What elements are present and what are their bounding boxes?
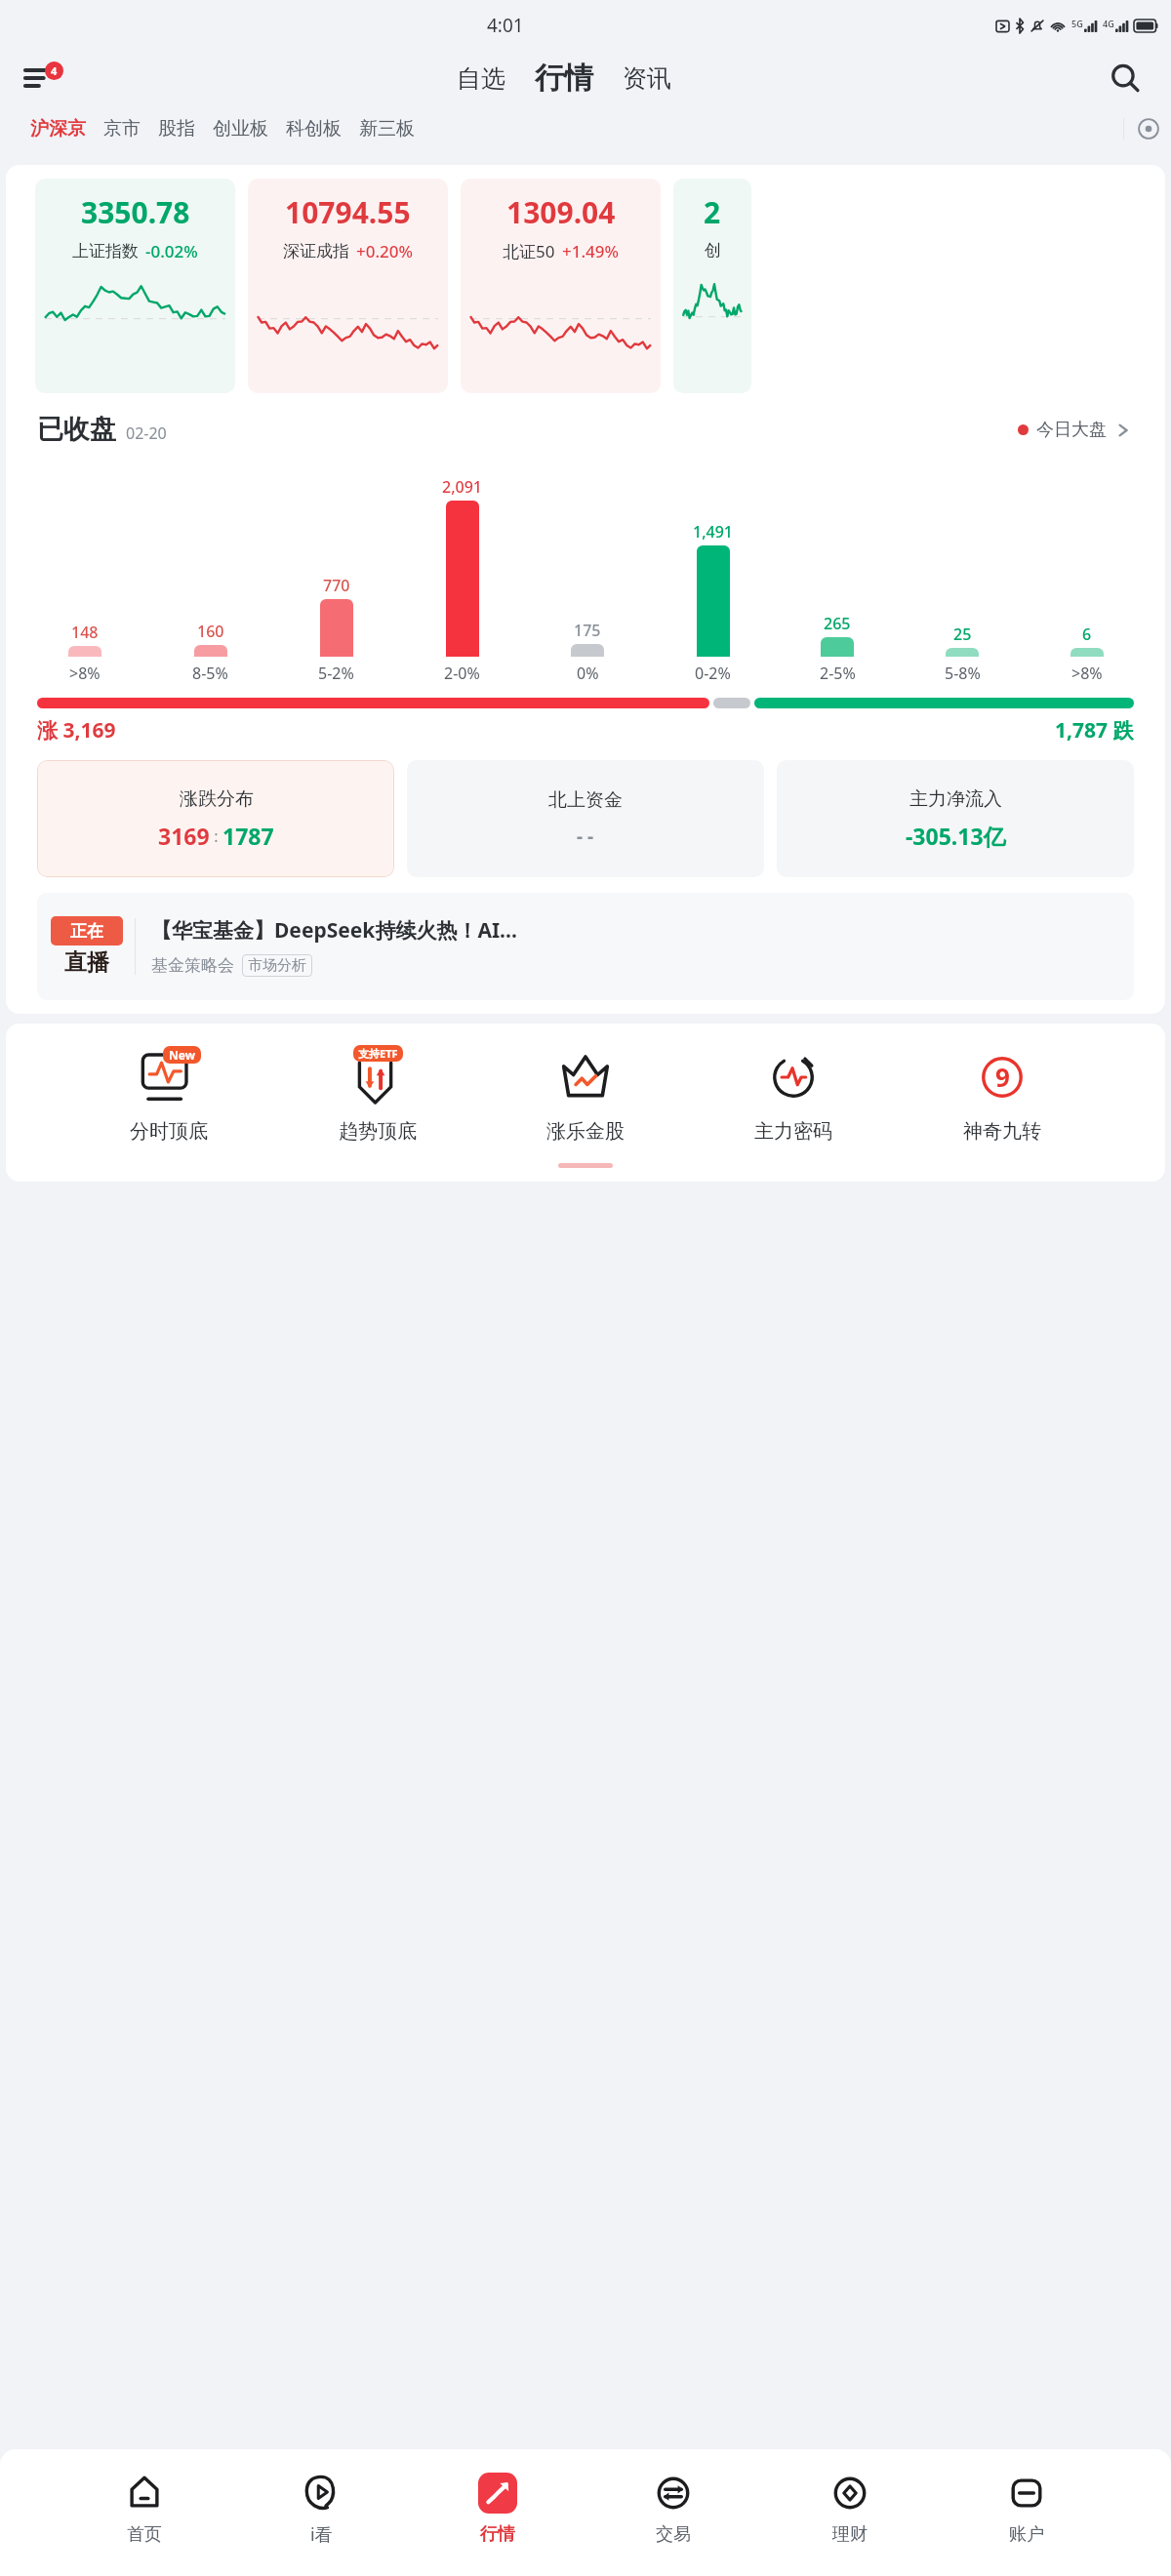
- button[interactable]: 1309.04: [461, 179, 661, 393]
- button[interactable]: 创业板: [204, 111, 277, 146]
- staticText: 主力密码: [754, 1119, 832, 1144]
- staticText: 基金策略会: [151, 955, 234, 976]
- staticText: 涨跌分布: [180, 787, 254, 811]
- staticText: 02-20: [126, 423, 167, 444]
- staticText: 自选: [457, 63, 505, 94]
- staticText: 6: [1082, 624, 1092, 645]
- staticText: 科创板: [286, 117, 342, 141]
- staticText: 1,787 跌: [1055, 716, 1134, 745]
- staticText: +0.20%: [356, 240, 414, 262]
- button[interactable]: 行情: [529, 60, 599, 97]
- staticText: 神奇九转: [963, 1119, 1041, 1144]
- staticText: 沪深京: [30, 117, 86, 141]
- staticText: 市场分析: [248, 956, 306, 975]
- staticText: New: [169, 1047, 195, 1063]
- button[interactable]: 10794.55: [248, 179, 448, 393]
- staticText: 1309.04: [506, 192, 616, 232]
- button[interactable]: 股指: [149, 111, 204, 146]
- button[interactable]: 首页: [112, 2467, 177, 2550]
- staticText: 支持ETF: [358, 1046, 398, 1061]
- staticText: 5-2%: [318, 663, 354, 684]
- staticText: 已收盘: [37, 413, 116, 446]
- staticText: +1.49%: [562, 240, 620, 262]
- staticText: 分时顶底: [130, 1119, 208, 1144]
- button[interactable]: 京市: [95, 111, 149, 146]
- staticText: 上证指数: [72, 241, 139, 262]
- staticText: 交易: [656, 2523, 691, 2546]
- staticText: 0-2%: [695, 663, 731, 684]
- staticText: 770: [323, 575, 350, 596]
- button[interactable]: 北上资金: [407, 760, 764, 877]
- button[interactable]: New: [124, 1045, 214, 1146]
- button[interactable]: 自选: [447, 63, 515, 94]
- staticText: 4: [51, 63, 58, 78]
- button[interactable]: 行情: [465, 2467, 530, 2550]
- staticText: 趋势顶底: [339, 1119, 417, 1144]
- button[interactable]: 2: [673, 179, 751, 393]
- staticText: 3169: [158, 821, 210, 851]
- staticText: 北上资金: [548, 788, 623, 812]
- button[interactable]: 正在: [37, 893, 1134, 1000]
- button[interactable]: 新三板: [350, 111, 424, 146]
- button[interactable]: Search: [1107, 60, 1144, 97]
- staticText: 5G: [1071, 18, 1083, 29]
- staticText: 账户: [1009, 2523, 1044, 2546]
- staticText: 175: [574, 620, 601, 641]
- staticText: 行情: [535, 60, 593, 97]
- staticText: 8-5%: [192, 663, 228, 684]
- staticText: 0%: [577, 663, 599, 684]
- staticText: 160: [197, 621, 224, 642]
- staticText: 10794.55: [285, 192, 411, 232]
- button[interactable]: 主力密码: [748, 1045, 838, 1146]
- staticText: 9: [995, 1060, 1010, 1094]
- button[interactable]: Settings: [1134, 114, 1163, 143]
- staticText: i看: [310, 2522, 333, 2547]
- staticText: 今日大盘: [1036, 419, 1107, 441]
- staticText: 主力净流入: [909, 787, 1002, 811]
- staticText: -0.02%: [145, 240, 198, 262]
- button[interactable]: i看: [289, 2466, 353, 2551]
- staticText: 涨 3,169: [37, 716, 116, 745]
- staticText: 【华宝基金】DeepSeek持续火热！AI...: [151, 916, 517, 945]
- button[interactable]: 涨跌分布: [37, 760, 394, 877]
- staticText: 25: [953, 624, 972, 645]
- staticText: 5-8%: [945, 663, 981, 684]
- staticText: >8%: [1071, 663, 1103, 684]
- staticText: 3350.78: [81, 192, 190, 232]
- staticText: 行情: [480, 2523, 515, 2546]
- staticText: 正在: [70, 921, 103, 942]
- staticText: 新三板: [359, 117, 415, 141]
- staticText: 1787: [222, 821, 274, 851]
- staticText: 2-5%: [820, 663, 856, 684]
- button[interactable]: 交易: [641, 2467, 706, 2550]
- button[interactable]: 理财: [818, 2467, 882, 2550]
- staticText: 京市: [103, 117, 141, 141]
- staticText: 创业板: [213, 117, 268, 141]
- staticText: 创: [705, 240, 721, 261]
- button[interactable]: Menu: [21, 63, 59, 93]
- button[interactable]: 支持ETF: [333, 1045, 423, 1146]
- staticText: 涨乐金股: [546, 1119, 625, 1144]
- button[interactable]: 9: [957, 1045, 1047, 1146]
- button[interactable]: 科创板: [277, 111, 350, 146]
- button[interactable]: 主力净流入: [777, 760, 1134, 877]
- button[interactable]: 3350.78: [35, 179, 235, 393]
- button[interactable]: 今日大盘: [1014, 415, 1134, 445]
- staticText: 理财: [832, 2523, 868, 2546]
- button[interactable]: 沪深京: [21, 111, 95, 146]
- button[interactable]: 账户: [994, 2467, 1059, 2550]
- staticText: >8%: [69, 663, 101, 684]
- button[interactable]: 资讯: [613, 63, 681, 94]
- staticText: 4G: [1103, 18, 1114, 29]
- staticText: -305.13亿: [906, 821, 1006, 851]
- staticText: 北证50: [503, 240, 555, 262]
- staticText: 265: [824, 613, 851, 634]
- button[interactable]: 涨乐金股: [541, 1045, 630, 1146]
- staticText: 股指: [158, 117, 195, 141]
- staticText: 2: [704, 192, 721, 232]
- staticText: 148: [71, 622, 99, 643]
- staticText: 2-0%: [444, 663, 480, 684]
- staticText: 首页: [127, 2523, 162, 2546]
- staticText: - -: [577, 824, 594, 849]
- staticText: 深证成指: [283, 241, 349, 262]
